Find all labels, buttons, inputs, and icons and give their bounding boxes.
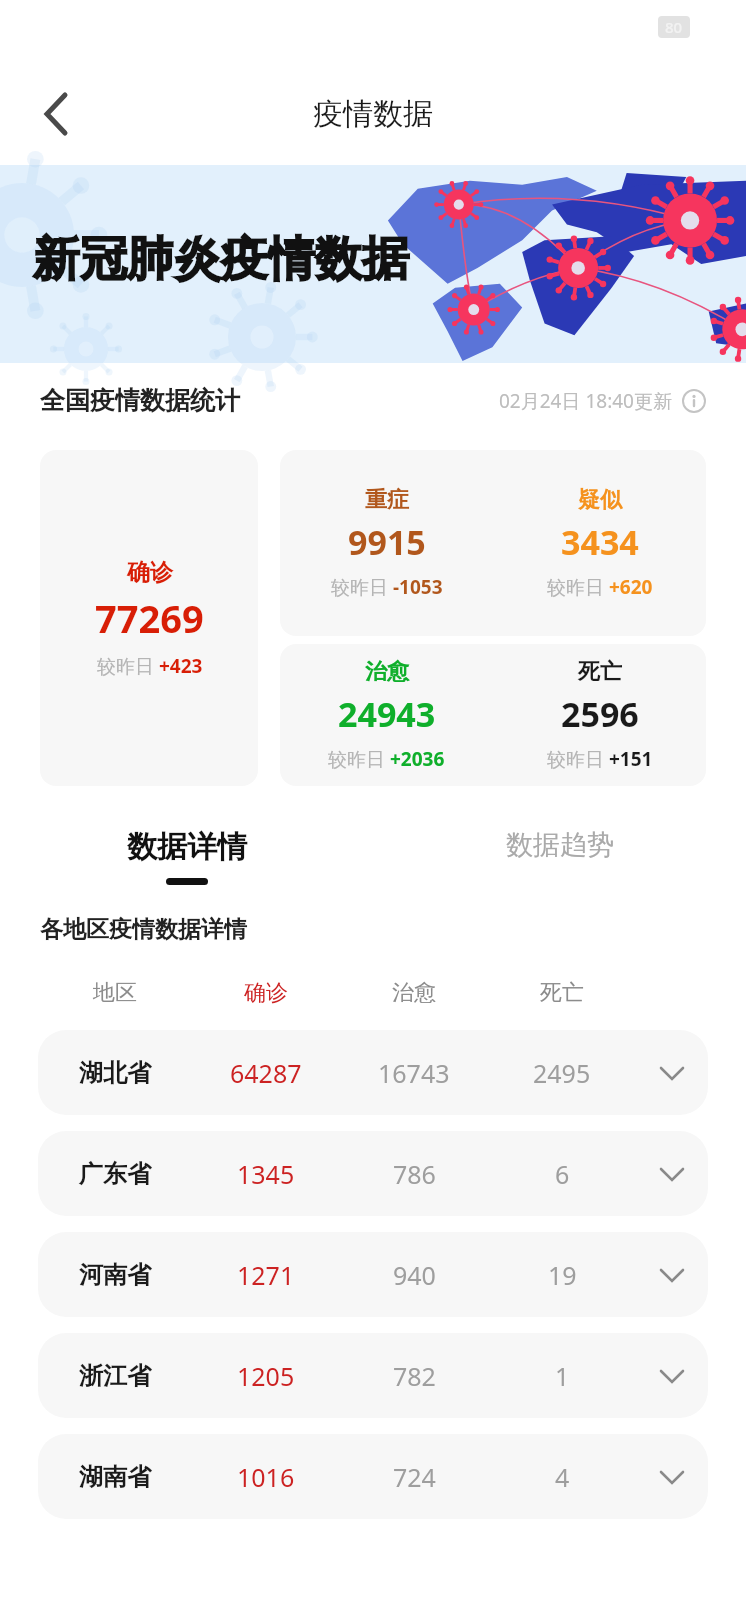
staticText: 疫情数据 — [313, 95, 433, 133]
staticText: 新冠肺炎疫情数据 — [33, 230, 409, 289]
staticText: 724 — [393, 1460, 436, 1494]
staticText: +2036 — [390, 746, 445, 772]
staticText: 6 — [555, 1157, 570, 1191]
staticText: 782 — [393, 1359, 436, 1393]
staticText: 2495 — [533, 1056, 591, 1090]
staticText: 确诊 — [127, 558, 173, 587]
staticText: 死亡 — [540, 979, 584, 1007]
button[interactable]: 广东省 — [38, 1131, 708, 1216]
staticText: 1205 — [237, 1359, 295, 1393]
staticText: 1 — [555, 1359, 570, 1393]
staticText: 2596 — [561, 691, 639, 737]
button[interactable]: 疑似 — [493, 450, 706, 636]
staticText: 治愈 — [365, 658, 409, 686]
button[interactable]: 确诊 — [40, 450, 258, 786]
staticText: 940 — [393, 1258, 436, 1292]
button[interactable]: 湖南省 — [38, 1434, 708, 1519]
staticText: 疑似 — [578, 486, 622, 514]
staticText: 786 — [393, 1157, 436, 1191]
button[interactable]: 数据趋势 — [373, 828, 746, 881]
staticText: 数据趋势 — [506, 828, 614, 862]
button[interactable]: Back — [28, 86, 84, 142]
button[interactable]: 湖北省 — [38, 1030, 708, 1115]
staticText: +620 — [609, 574, 653, 600]
staticText: +423 — [159, 653, 203, 679]
staticText: 重症 — [365, 486, 409, 514]
staticText: 02月24日 18:40更新 — [499, 388, 672, 414]
staticText: 湖南省 — [79, 1462, 151, 1492]
staticText: 河南省 — [79, 1260, 151, 1290]
staticText: -1053 — [393, 574, 443, 600]
staticText: 浙江省 — [79, 1361, 151, 1391]
button[interactable]: 数据详情 — [0, 828, 373, 885]
staticText: 较昨日 — [547, 746, 609, 772]
staticText: 确诊 — [244, 979, 288, 1007]
staticText: 24943 — [338, 691, 436, 737]
staticText: 16743 — [378, 1056, 450, 1090]
button[interactable]: 治愈 — [280, 644, 493, 786]
staticText: 3434 — [561, 519, 639, 565]
button[interactable]: Info — [682, 389, 706, 413]
staticText: 较昨日 — [328, 746, 390, 772]
staticText: 80 — [665, 17, 683, 37]
staticText: 1345 — [237, 1157, 295, 1191]
button[interactable]: 死亡 — [493, 644, 706, 786]
button[interactable]: 浙江省 — [38, 1333, 708, 1418]
staticText: 湖北省 — [79, 1058, 151, 1088]
staticText: 全国疫情数据统计 — [40, 385, 240, 416]
staticText: 较昨日 — [331, 574, 393, 600]
staticText: 64287 — [230, 1056, 302, 1090]
staticText: 77269 — [95, 592, 204, 644]
button[interactable]: 重症 — [280, 450, 493, 636]
staticText: 1271 — [237, 1258, 295, 1292]
staticText: 广东省 — [79, 1159, 151, 1189]
staticText: 治愈 — [392, 979, 436, 1007]
staticText: 死亡 — [578, 658, 622, 686]
button[interactable]: 河南省 — [38, 1232, 708, 1317]
staticText: 9915 — [348, 519, 426, 565]
staticText: 较昨日 — [97, 653, 159, 679]
staticText: 1016 — [237, 1460, 295, 1494]
staticText: 各地区疫情数据详情 — [40, 915, 247, 944]
staticText: +151 — [609, 746, 653, 772]
staticText: 19 — [548, 1258, 577, 1292]
staticText: 数据详情 — [127, 828, 247, 866]
staticText: 较昨日 — [547, 574, 609, 600]
staticText: 地区 — [93, 979, 137, 1007]
staticText: 4 — [555, 1460, 570, 1494]
